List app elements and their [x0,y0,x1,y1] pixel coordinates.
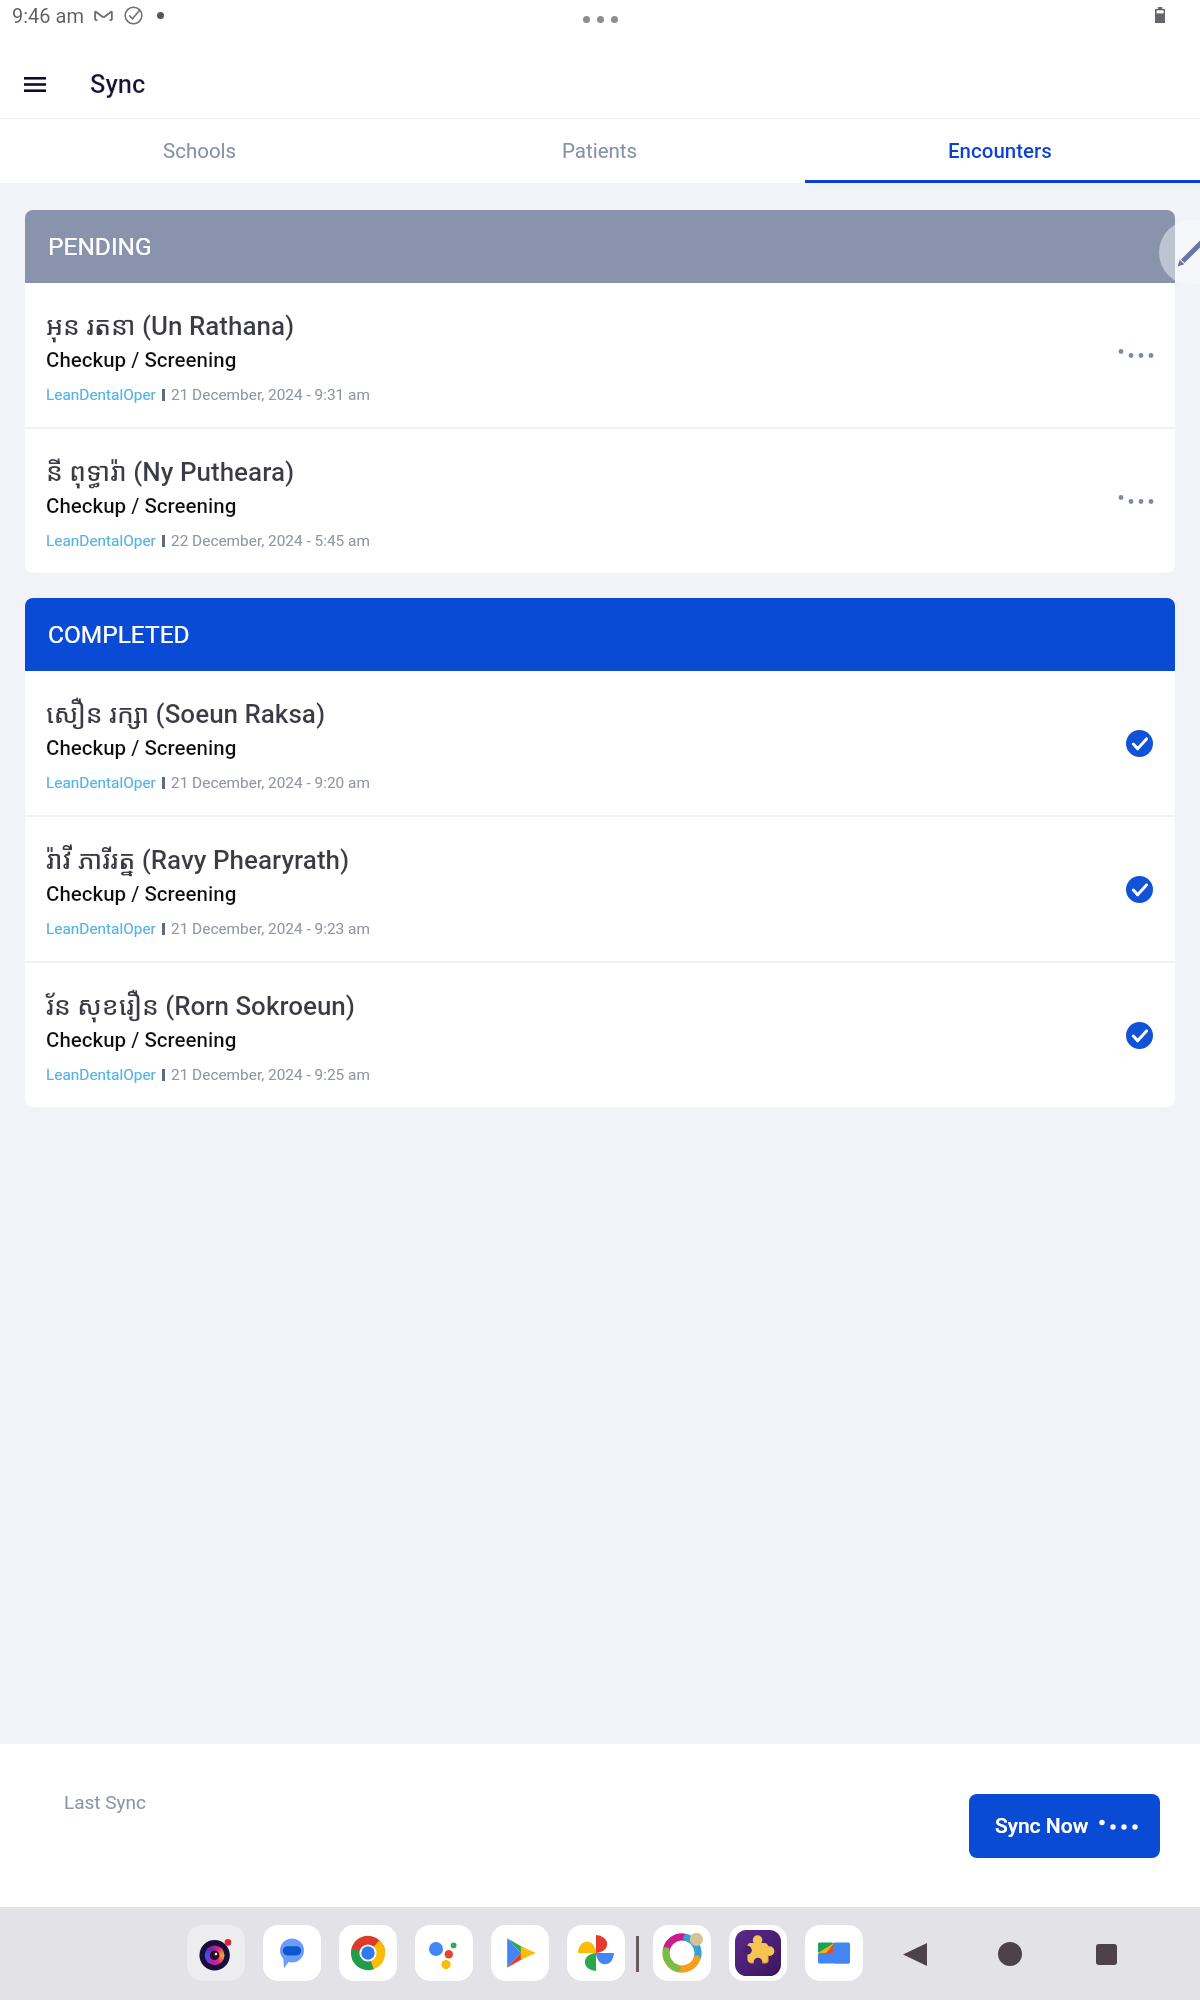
button[interactable]: COMPLETED [25,598,1175,671]
staticText: 21 December, 2024 - 9:20 am [171,774,370,792]
staticText: Last Sync [64,1791,147,1813]
button[interactable]: PENDING [25,210,1175,283]
button[interactable]: Edit [1159,220,1200,285]
button[interactable]: Puzzle game [729,1925,787,1981]
staticText: LeanDentalOper [46,774,156,792]
staticText: Encounters [948,139,1052,163]
button[interactable]: រ៉ាវី ភារីរត្ន (Ravy Phearyrath) [25,817,1175,961]
button[interactable]: Patients [400,119,800,183]
staticText: អុន រតនា (Un Rathana) [46,307,295,342]
staticText: Checkup / Screening [46,1028,237,1052]
button[interactable]: Open navigation menu [0,49,70,119]
button[interactable]: Sync pending [1119,350,1153,360]
button[interactable]: Sync pending [1119,496,1153,506]
staticText: នី ពុទ្ធារ៉ា (Ny Putheara) [46,453,295,488]
staticText: Patients [562,139,638,163]
button[interactable]: Play Store [491,1925,549,1981]
button[interactable]: សឿន រក្សា (Soeun Raksa) [25,671,1175,815]
button[interactable]: Synced [1126,730,1153,757]
staticText: រ៉ាវី ភារីរត្ន (Ravy Phearyrath) [46,841,350,876]
staticText: Sync Now [995,1814,1089,1839]
button[interactable]: Schools [0,119,400,183]
staticText: LeanDentalOper [46,532,156,550]
staticText: Checkup / Screening [46,494,237,518]
staticText: Checkup / Screening [46,348,237,372]
button[interactable]: Home [987,1931,1033,1977]
staticText: 21 December, 2024 - 9:23 am [171,920,370,938]
staticText: រ័ន សុខរឿន (Rorn Sokroeun) [46,987,356,1022]
staticText: 21 December, 2024 - 9:31 am [171,386,370,404]
staticText: COMPLETED [48,620,190,649]
staticText: Checkup / Screening [46,736,237,760]
button[interactable]: Files [805,1925,863,1981]
staticText: LeanDentalOper [46,920,156,938]
button[interactable]: Messages [263,1925,321,1981]
button[interactable]: Synced [1126,876,1153,903]
button[interactable]: អុន រតនា (Un Rathana) [25,283,1175,427]
staticText: 22 December, 2024 - 5:45 am [171,532,370,550]
staticText: Schools [163,139,237,163]
button[interactable]: Assistant [415,1925,473,1981]
button[interactable]: Chrome [339,1925,397,1981]
staticText: LeanDentalOper [46,386,156,404]
staticText: សឿន រក្សា (Soeun Raksa) [46,695,326,730]
button[interactable]: Encounters [800,119,1200,183]
staticText: 9:46 am [12,4,84,27]
staticText: LeanDentalOper [46,1066,156,1084]
staticText: PENDING [48,232,152,261]
button[interactable]: នី ពុទ្ធារ៉ា (Ny Putheara) [25,429,1175,573]
button[interactable]: Back [892,1931,938,1977]
button[interactable]: Synced [1126,1022,1153,1049]
button[interactable]: Browser [653,1925,711,1981]
staticText: Sync [90,69,146,99]
staticText: 21 December, 2024 - 9:25 am [171,1066,370,1084]
staticText: Checkup / Screening [46,882,237,906]
button[interactable]: Photos [567,1925,625,1981]
button[interactable]: រ័ន សុខរឿន (Rorn Sokroeun) [25,963,1175,1107]
button[interactable]: Sync Now [969,1794,1160,1858]
button[interactable]: Camera [187,1925,245,1981]
button[interactable]: Recent apps [1083,1931,1129,1977]
